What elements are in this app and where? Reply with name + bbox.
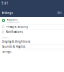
staticText: 9:41 — [2, 2, 9, 5]
staticText: Apple ID, iCloud, Media — [7, 21, 20, 23]
button[interactable]: Display & Brightness — [0, 39, 64, 44]
staticText: Privacy & Security — [6, 25, 28, 28]
button[interactable]: Edit — [57, 11, 62, 15]
staticText: Settings — [2, 11, 13, 15]
button[interactable]: Storage — [0, 49, 64, 54]
button[interactable]: Account — [0, 17, 64, 24]
button[interactable]: Privacy & Security — [0, 24, 64, 29]
staticText: GENERAL — [2, 37, 9, 39]
button[interactable]: Notifications — [0, 29, 64, 34]
staticText: Display & Brightness — [2, 40, 30, 43]
staticText: Edit — [57, 11, 62, 15]
staticText: Notifications — [6, 30, 23, 34]
button[interactable]: Sounds & Haptics — [0, 44, 64, 49]
staticText: Sounds & Haptics — [2, 45, 25, 48]
staticText: Storage — [2, 50, 12, 53]
staticText: Account — [7, 18, 18, 21]
